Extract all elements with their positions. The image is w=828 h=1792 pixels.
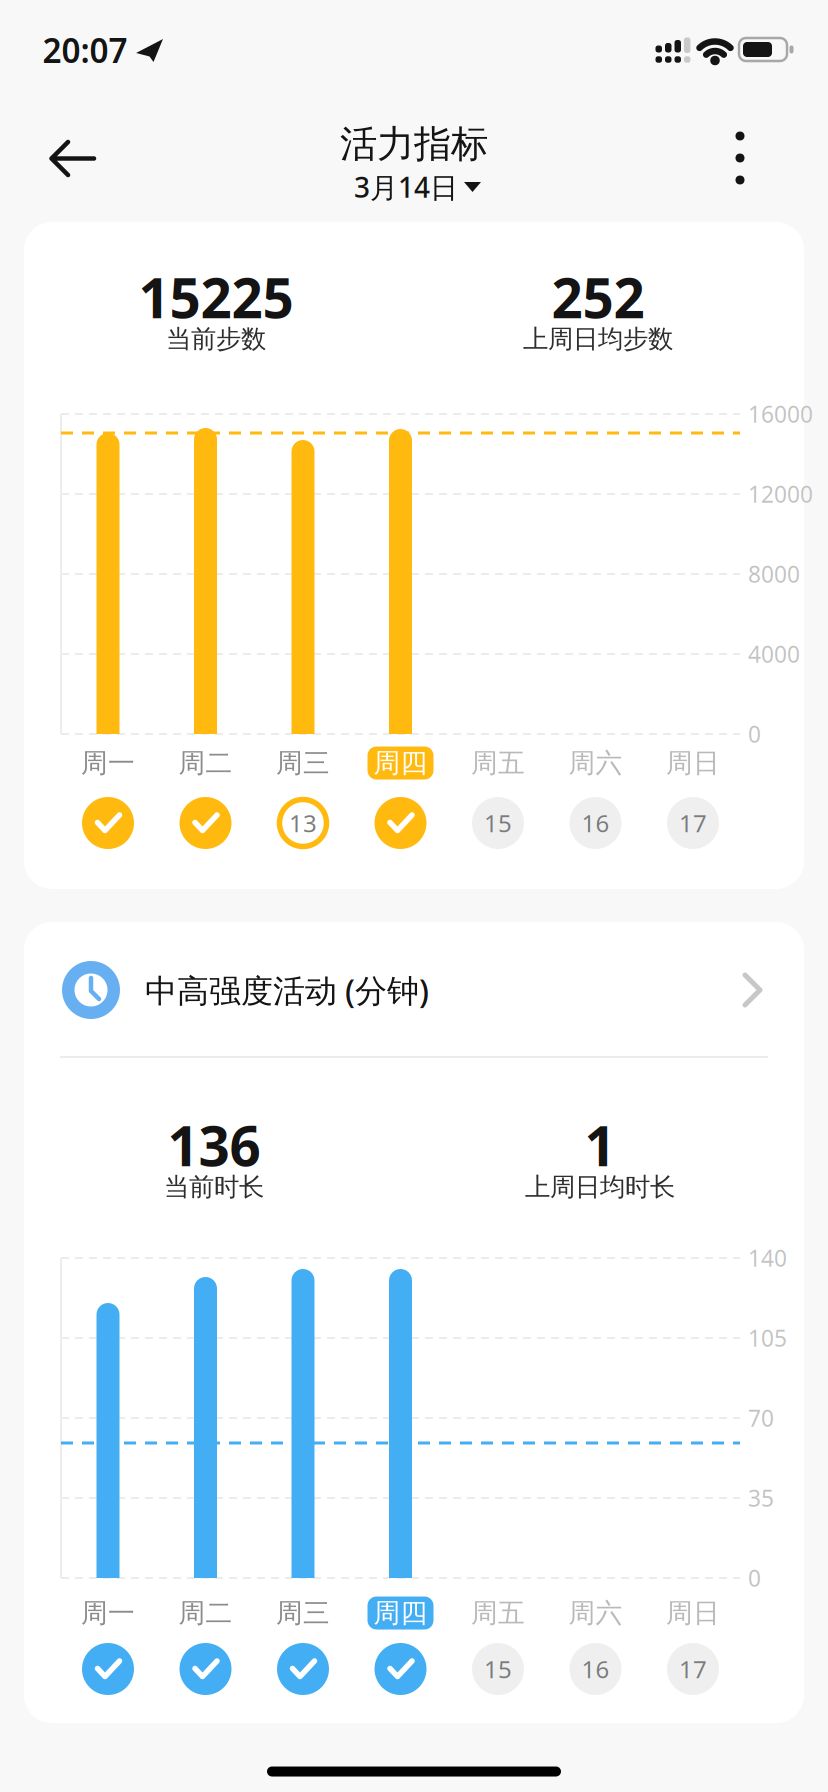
staticText: 252 (551, 261, 644, 333)
staticText: 136 (167, 1109, 260, 1181)
staticText: 16 (581, 807, 609, 839)
staticText: 17 (679, 807, 707, 839)
staticText: 周五 (471, 747, 525, 779)
staticText: 周六 (568, 1597, 622, 1629)
staticText: 中高强度活动 (分钟) (145, 969, 429, 1011)
staticText: 1 (584, 1109, 615, 1181)
staticText: 周日 (666, 1597, 720, 1629)
staticText: 105 (748, 1323, 787, 1353)
staticText: 上周日均步数 (523, 323, 673, 354)
staticText: 15 (484, 1653, 512, 1685)
staticText: 3月14日 (354, 168, 458, 206)
staticText: 4000 (748, 639, 800, 669)
staticText: 周一 (81, 747, 135, 779)
staticText: 活力指标 (340, 121, 488, 167)
staticText: 140 (748, 1243, 787, 1273)
staticText: 8000 (748, 559, 800, 589)
staticText: 周四 (373, 1597, 427, 1629)
staticText: 20:07 (42, 28, 127, 72)
staticText: 周二 (178, 1597, 232, 1629)
staticText: 16 (581, 1653, 609, 1685)
staticText: 周四 (373, 747, 427, 779)
staticText: 周二 (178, 747, 232, 779)
staticText: 当前步数 (166, 323, 266, 354)
staticText: 17 (679, 1653, 707, 1685)
staticText: 周五 (471, 1597, 525, 1629)
staticText: 16000 (748, 399, 813, 429)
staticText: 周六 (568, 747, 622, 779)
staticText: 0 (748, 1563, 761, 1593)
staticText: 0 (748, 719, 761, 749)
staticText: 周三 (276, 747, 330, 779)
staticText: 12000 (748, 479, 813, 509)
staticText: 周三 (276, 1597, 330, 1629)
staticText: 周一 (81, 1597, 135, 1629)
staticText: 35 (748, 1483, 774, 1513)
staticText: 15225 (138, 261, 293, 333)
staticText: 70 (748, 1403, 774, 1433)
staticText: 15 (484, 807, 512, 839)
staticText: 周日 (666, 747, 720, 779)
staticText: 上周日均时长 (525, 1171, 675, 1202)
staticText: 当前时长 (164, 1171, 264, 1202)
staticText: 13 (289, 807, 317, 839)
